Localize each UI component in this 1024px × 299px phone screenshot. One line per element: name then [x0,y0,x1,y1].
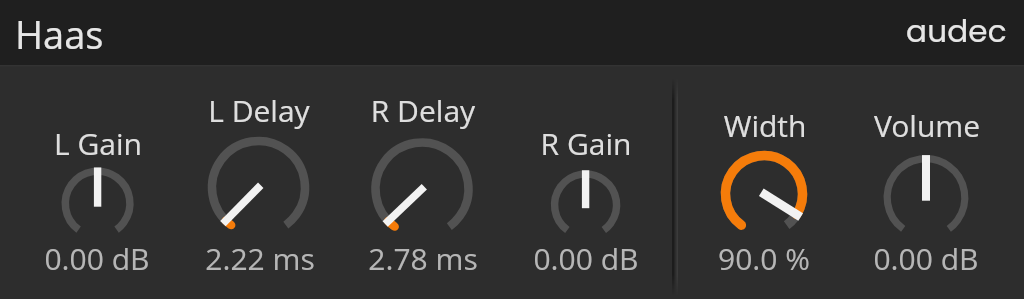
button[interactable]: Volume [827,105,1024,146]
button[interactable]: 90.0 % [664,238,864,279]
button[interactable]: 2.22 ms [160,238,360,279]
staticText: R Delay [323,90,523,131]
staticText: 0.00 dB [0,238,197,279]
button[interactable]: 0.00 dB [826,238,1024,279]
button[interactable]: audec [906,9,1007,52]
button[interactable]: 2.78 ms [323,238,523,279]
button[interactable]: R Delay [323,90,523,131]
staticText: Width [665,105,865,146]
button[interactable]: R Gain [486,123,686,164]
staticText: 2.78 ms [323,238,523,279]
staticText: Volume [827,105,1024,146]
staticText: R Gain [486,123,686,164]
button[interactable]: Width [665,105,865,146]
button[interactable]: L Gain [0,123,198,164]
button[interactable]: 0.00 dB [486,238,686,279]
button[interactable]: 0.00 dB [0,238,197,279]
staticText: 2.22 ms [160,238,360,279]
staticText: 90.0 % [664,238,864,279]
button[interactable]: Haas [15,8,104,60]
staticText: Haas [15,8,104,60]
staticText: audec [906,9,1007,52]
staticText: 0.00 dB [486,238,686,279]
staticText: L Gain [0,123,198,164]
button[interactable]: L Delay [159,90,359,131]
staticText: L Delay [159,90,359,131]
staticText: 0.00 dB [826,238,1024,279]
